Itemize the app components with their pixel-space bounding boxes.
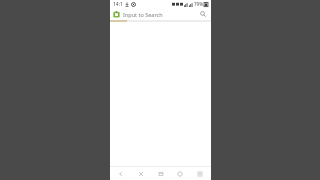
button[interactable]: Close <box>132 167 150 180</box>
button[interactable]: Tabs <box>152 167 170 180</box>
staticText: 14:1 <box>113 1 123 8</box>
button[interactable]: Browser home <box>110 8 211 20</box>
button[interactable]: Browser home <box>113 11 120 18</box>
button[interactable]: Search <box>198 9 208 19</box>
staticText: Input to Search <box>123 11 198 18</box>
staticText: 79% <box>194 1 203 7</box>
button[interactable]: Back <box>112 167 130 180</box>
button[interactable]: Menu <box>191 167 209 180</box>
button[interactable]: Home <box>171 167 189 180</box>
